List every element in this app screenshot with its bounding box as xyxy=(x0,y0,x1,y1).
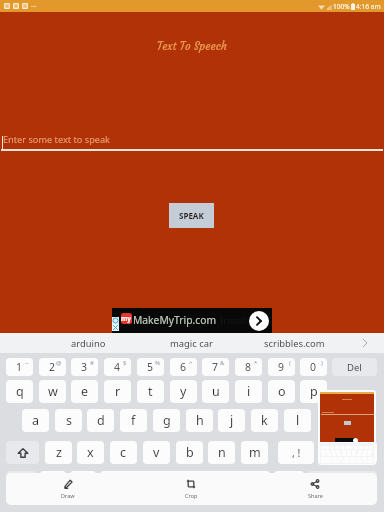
staticText: 9 xyxy=(278,360,285,374)
button[interactable]: 1 xyxy=(6,358,33,376)
button[interactable]: u xyxy=(202,380,229,403)
button[interactable]: w xyxy=(39,380,66,403)
button[interactable]: r xyxy=(104,380,131,403)
button[interactable]: scribbles.com xyxy=(243,333,346,353)
button[interactable]: k xyxy=(251,409,278,432)
button[interactable]: Open advertisement xyxy=(249,311,269,331)
staticText: Draw xyxy=(61,492,75,499)
button[interactable]: c xyxy=(110,441,137,464)
button[interactable] xyxy=(318,441,345,464)
button[interactable]: , ! xyxy=(278,441,314,464)
button[interactable]: q xyxy=(6,380,33,403)
staticText: @ xyxy=(56,359,62,367)
button[interactable] xyxy=(112,317,119,324)
button[interactable]: s xyxy=(55,409,82,432)
button[interactable]: m xyxy=(241,441,268,464)
staticText: u xyxy=(212,383,220,400)
button[interactable]: e xyxy=(71,380,98,403)
button[interactable]: More suggestions xyxy=(358,336,372,350)
button[interactable]: 6 xyxy=(170,358,197,376)
button[interactable]: Screenshot preview xyxy=(318,390,376,465)
button[interactable]: 5 xyxy=(137,358,164,376)
staticText: ) xyxy=(321,359,323,367)
button[interactable]: 8 xyxy=(235,358,262,376)
button[interactable]: h xyxy=(186,409,213,432)
button[interactable] xyxy=(40,471,66,494)
button[interactable]: SPEAK xyxy=(169,203,214,228)
staticText: g xyxy=(163,412,171,429)
button[interactable]: my xyxy=(112,308,272,333)
button[interactable]: v xyxy=(143,441,170,464)
button[interactable]: i xyxy=(235,380,262,403)
staticText: SPEAK xyxy=(179,210,204,221)
button[interactable]: Crop xyxy=(129,473,253,505)
staticText: , ! xyxy=(292,446,301,460)
button[interactable]: 2 xyxy=(39,358,66,376)
button[interactable]: t xyxy=(137,380,164,403)
button[interactable]: l xyxy=(284,409,311,432)
staticText: 5 xyxy=(147,360,154,374)
staticText: q xyxy=(16,383,24,400)
staticText: 2 xyxy=(49,360,56,374)
button[interactable]: x xyxy=(77,441,104,464)
staticText: Share xyxy=(308,492,323,499)
staticText: 6 xyxy=(180,360,187,374)
button[interactable] xyxy=(70,471,96,494)
button[interactable]: Shift xyxy=(6,441,39,464)
staticText: t xyxy=(148,383,153,400)
staticText: b xyxy=(186,444,194,461)
button[interactable]: y xyxy=(170,380,197,403)
button[interactable]: 9 xyxy=(268,358,295,376)
staticText: ( xyxy=(289,359,291,367)
button[interactable] xyxy=(6,471,36,494)
button[interactable] xyxy=(100,471,270,494)
button[interactable]: Close ad xyxy=(112,324,119,331)
staticText: w xyxy=(48,383,58,400)
button[interactable] xyxy=(308,471,377,494)
button[interactable]: 4 xyxy=(104,358,131,376)
staticText: scribbles.com xyxy=(264,337,325,350)
staticText: * xyxy=(254,359,258,367)
button[interactable]: b xyxy=(176,441,203,464)
staticText: Crop xyxy=(185,492,198,499)
staticText: Text To Speech xyxy=(157,39,227,53)
button[interactable]: z xyxy=(45,441,72,464)
staticText: & xyxy=(220,359,225,367)
staticText: x xyxy=(87,444,94,461)
staticText: Del xyxy=(347,361,362,374)
staticText: f xyxy=(131,412,136,429)
button[interactable]: a xyxy=(22,409,49,432)
staticText: y xyxy=(180,383,187,400)
button[interactable]: Share xyxy=(253,473,377,505)
staticText: z xyxy=(56,444,62,461)
button[interactable]: 3 xyxy=(71,358,98,376)
staticText: magic car xyxy=(170,337,213,350)
button[interactable]: magic car xyxy=(140,333,243,353)
button[interactable]: j xyxy=(218,409,245,432)
staticText: 8 xyxy=(245,360,252,374)
button[interactable]: 7 xyxy=(202,358,229,376)
staticText: c xyxy=(120,444,127,461)
button[interactable]: p xyxy=(300,380,327,403)
staticText: 4 xyxy=(114,360,121,374)
button[interactable]: d xyxy=(87,409,114,432)
button[interactable]: o xyxy=(268,380,295,403)
button[interactable]: 0 xyxy=(300,358,327,376)
button[interactable] xyxy=(350,441,377,464)
button[interactable]: f xyxy=(120,409,147,432)
button[interactable]: g xyxy=(153,409,180,432)
button[interactable]: Draw xyxy=(6,473,129,505)
staticText: v xyxy=(153,444,160,461)
staticText: 3 xyxy=(81,360,88,374)
staticText: Install xyxy=(220,314,248,327)
staticText: s xyxy=(66,412,72,429)
staticText: n xyxy=(218,444,226,461)
staticText: m xyxy=(249,444,261,461)
button[interactable]: Del xyxy=(332,358,377,376)
button[interactable]: n xyxy=(208,441,235,464)
staticText: 0 xyxy=(310,360,317,374)
button[interactable]: arduino xyxy=(37,333,140,353)
staticText: 100% xyxy=(333,2,350,11)
staticText: o xyxy=(278,383,286,400)
